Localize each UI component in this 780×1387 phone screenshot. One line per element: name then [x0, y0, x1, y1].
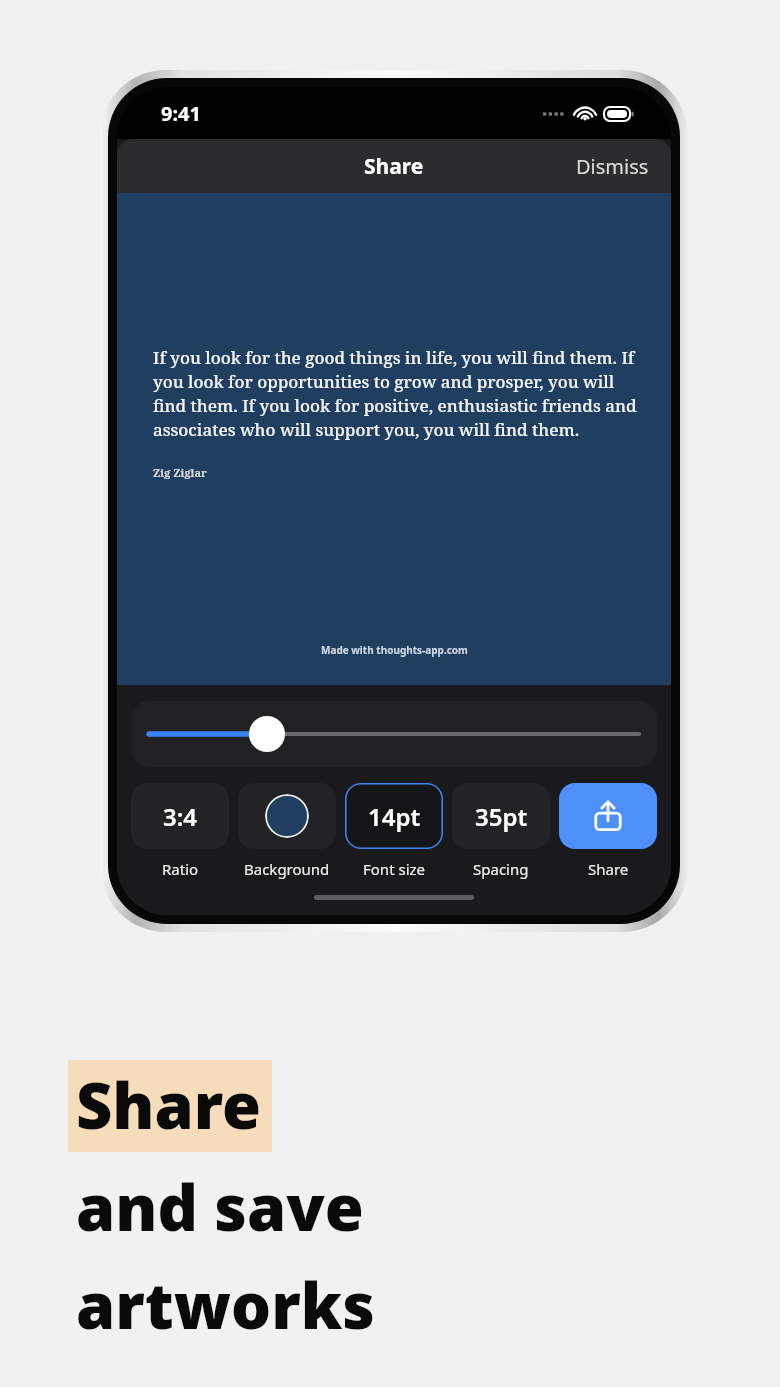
staticText: Spacing [473, 859, 529, 879]
staticText: Dismiss [576, 153, 649, 180]
staticText: If you look for the good things in life,… [153, 346, 639, 441]
staticText: Font size [363, 859, 426, 879]
button[interactable] [238, 783, 336, 849]
button[interactable]: Font size slider [131, 701, 657, 767]
staticText: Share [588, 859, 629, 879]
staticText: Ratio [162, 859, 199, 879]
button[interactable]: 3:4 [131, 783, 229, 849]
staticText: artworks [76, 1262, 375, 1348]
staticText: 35pt [475, 800, 528, 833]
button[interactable]: 14pt [345, 783, 443, 849]
button[interactable]: Share [559, 783, 657, 849]
staticText: Zig Ziglar [153, 465, 207, 480]
button[interactable]: 35pt [452, 783, 550, 849]
staticText: Background [244, 859, 330, 879]
staticText: Share [76, 1062, 262, 1148]
staticText: and save [76, 1164, 364, 1250]
staticText: 9:41 [161, 100, 201, 127]
staticText: Made with thoughts-app.com [321, 643, 468, 657]
staticText: 14pt [368, 800, 421, 833]
staticText: 3:4 [163, 800, 198, 833]
button[interactable]: Dismiss [554, 143, 671, 190]
staticText: Share [364, 152, 424, 181]
